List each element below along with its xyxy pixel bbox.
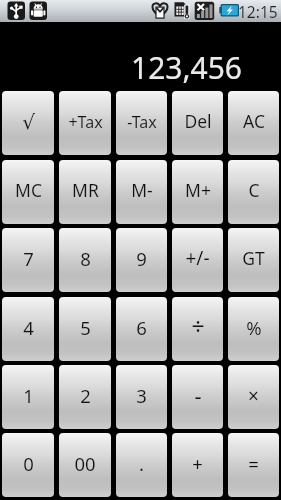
staticText: 7	[23, 246, 34, 271]
staticText: 8	[80, 246, 91, 271]
button[interactable]: Decimal point	[116, 433, 167, 497]
staticText: GT	[242, 246, 265, 270]
staticText: 2	[80, 383, 91, 408]
staticText: %	[246, 315, 262, 340]
staticText: 5	[80, 315, 91, 340]
staticText: AC	[243, 109, 265, 133]
button[interactable]: Percent	[228, 297, 279, 361]
staticText: 00	[74, 451, 96, 476]
button[interactable]: Plus	[172, 433, 223, 497]
staticText: -Tax	[127, 111, 157, 133]
button[interactable]: AC	[228, 91, 279, 155]
staticText: √	[22, 110, 35, 133]
button[interactable]: Multiply	[228, 365, 279, 429]
button[interactable]: C	[228, 160, 279, 224]
staticText: .	[139, 451, 144, 476]
staticText: -	[194, 380, 202, 410]
button[interactable]: MC	[2, 160, 54, 224]
button[interactable]: -Tax	[116, 91, 167, 155]
button[interactable]: 0	[2, 433, 54, 497]
button[interactable]: 3	[116, 365, 167, 429]
staticText: 1	[23, 383, 34, 408]
staticText: 3	[136, 383, 147, 408]
button[interactable]: 00	[59, 433, 111, 497]
button[interactable]: 7	[2, 228, 54, 292]
staticText: MC	[15, 178, 42, 202]
button[interactable]: 4	[2, 297, 54, 361]
staticText: ×	[248, 383, 259, 409]
button[interactable]: Del	[172, 91, 223, 155]
button[interactable]: MR	[59, 160, 111, 224]
button[interactable]: GT	[228, 228, 279, 292]
button[interactable]: 1	[2, 365, 54, 429]
staticText: +/-	[185, 245, 210, 271]
button[interactable]: 6	[116, 297, 167, 361]
staticText: =	[248, 451, 259, 476]
button[interactable]: Minus	[172, 365, 223, 429]
button[interactable]: Square root	[2, 91, 54, 155]
staticText: 4	[23, 315, 34, 340]
staticText: MR	[72, 178, 99, 202]
staticText: 123,456	[131, 47, 242, 88]
staticText: 6	[136, 315, 147, 340]
button[interactable]: +/-	[172, 228, 223, 292]
staticText: C	[248, 178, 260, 202]
staticText: M-	[131, 178, 153, 202]
button[interactable]: Divide	[172, 297, 223, 361]
button[interactable]: 8	[59, 228, 111, 292]
button[interactable]: 9	[116, 228, 167, 292]
button[interactable]: M-	[116, 160, 167, 224]
staticText: M+	[185, 178, 211, 202]
staticText: 12:15	[238, 1, 278, 22]
staticText: Del	[184, 109, 212, 133]
button[interactable]: Equals	[228, 433, 279, 497]
staticText: +	[192, 451, 203, 476]
staticText: 0	[23, 451, 34, 476]
button[interactable]: +Tax	[59, 91, 111, 155]
staticText: +Tax	[68, 111, 103, 133]
button[interactable]: M+	[172, 160, 223, 224]
staticText: ÷	[191, 310, 205, 341]
button[interactable]: 5	[59, 297, 111, 361]
staticText: 9	[136, 246, 147, 271]
button[interactable]: 2	[59, 365, 111, 429]
